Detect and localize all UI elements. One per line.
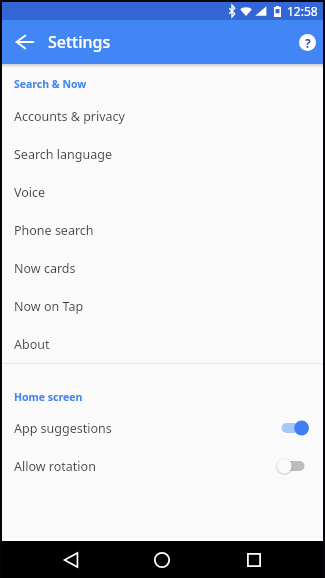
button[interactable]: Navigate up (9, 26, 41, 58)
staticText: Now on Tap (14, 298, 84, 315)
staticText: Search & Now (14, 77, 87, 91)
button[interactable]: Recent apps (233, 541, 275, 578)
staticText: ? (305, 35, 311, 51)
staticText: App suggestions (14, 420, 277, 437)
staticText: Home screen (14, 390, 83, 404)
button[interactable]: Now on Tap (2, 287, 323, 325)
button[interactable]: Accounts & privacy (2, 97, 323, 135)
button[interactable]: About (2, 325, 323, 363)
staticText: Search language (14, 146, 112, 163)
staticText: Accounts & privacy (14, 108, 125, 125)
button[interactable]: Search language (2, 135, 323, 173)
button[interactable]: Now cards (2, 249, 323, 287)
button[interactable]: Phone search (2, 211, 323, 249)
button[interactable]: App suggestions (2, 409, 323, 447)
staticText: Phone search (14, 222, 94, 239)
staticText: Voice (14, 184, 46, 201)
button[interactable]: Help (294, 29, 320, 55)
button[interactable]: Back (50, 541, 92, 578)
staticText: Now cards (14, 260, 76, 277)
button[interactable]: Voice (2, 173, 323, 211)
button[interactable]: Home (141, 541, 183, 578)
button[interactable]: Allow rotation (2, 447, 323, 485)
staticText: Allow rotation (14, 458, 277, 475)
staticText: 12:58 (287, 3, 318, 19)
staticText: About (14, 336, 50, 353)
staticText: Settings (48, 31, 111, 53)
